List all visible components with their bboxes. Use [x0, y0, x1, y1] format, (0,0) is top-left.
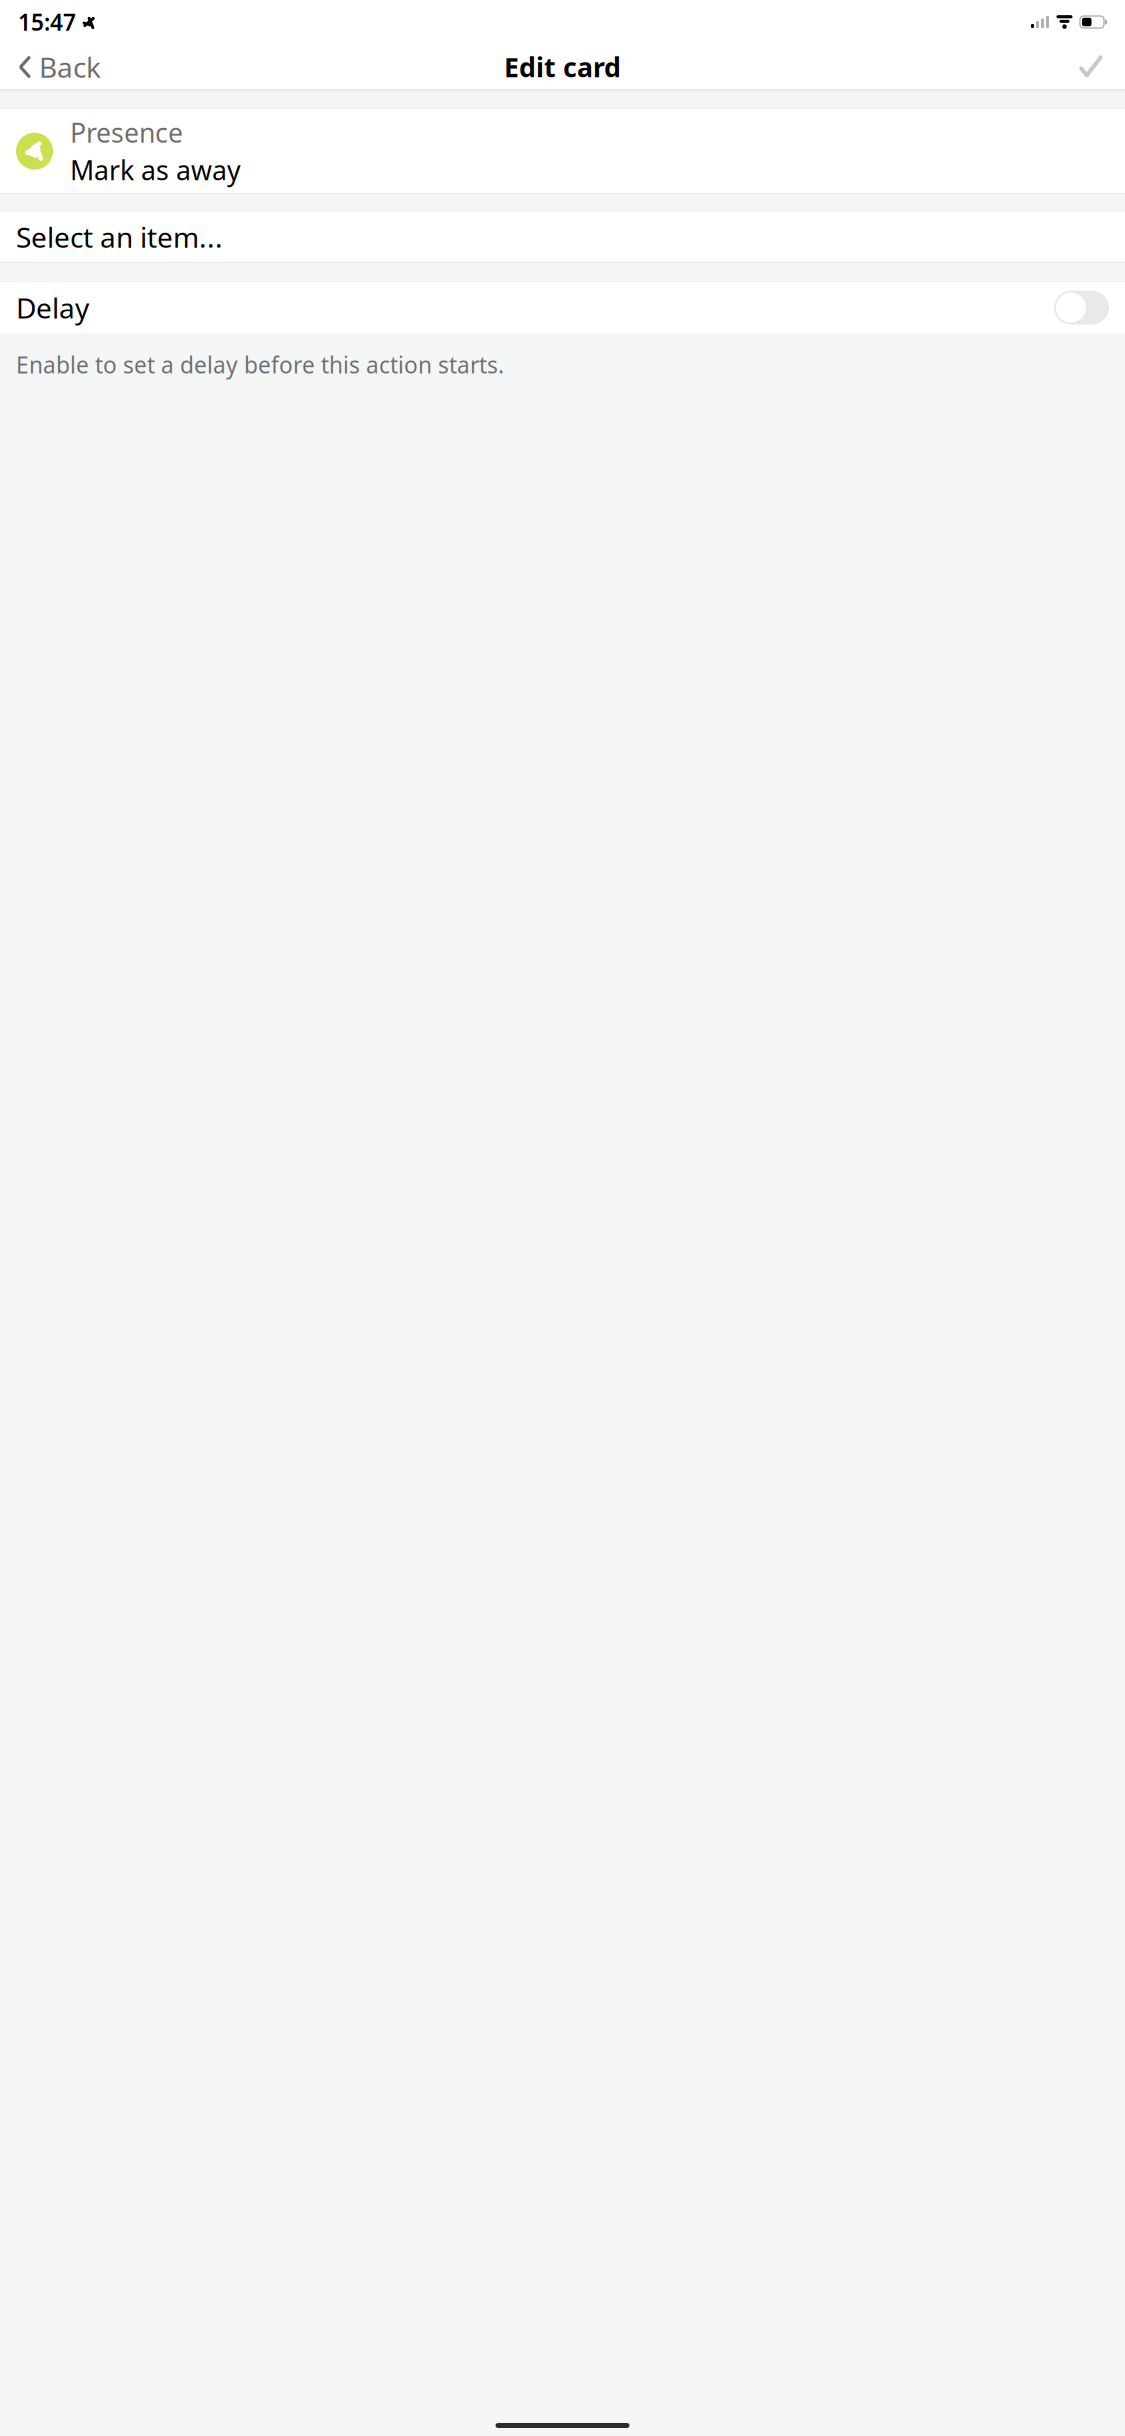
staticText: 15:47: [18, 7, 76, 37]
button[interactable]: Back: [4, 45, 115, 89]
staticText: Select an item...: [16, 218, 223, 255]
button[interactable]: Delay: [0, 282, 1125, 334]
button[interactable]: Select an item...: [0, 211, 1125, 262]
staticText: Enable to set a delay before this action…: [16, 350, 504, 380]
staticText: Presence: [70, 115, 183, 150]
staticText: Mark as away: [70, 152, 241, 188]
staticText: Delay: [16, 289, 89, 326]
button[interactable]: Presence: [0, 109, 1125, 193]
staticText: Back: [39, 48, 101, 86]
staticText: Edit card: [504, 49, 621, 85]
button[interactable]: Save: [1061, 45, 1121, 89]
